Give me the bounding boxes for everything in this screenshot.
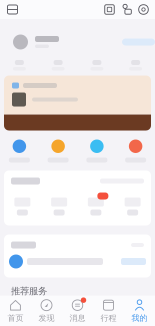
staticText: 首页 — [7, 313, 23, 323]
button[interactable]: Membership card — [5, 1, 20, 18]
button[interactable]: 首页 — [0, 300, 31, 323]
button[interactable]: Settings — [135, 1, 152, 18]
button[interactable]: 发现 — [31, 300, 62, 323]
button[interactable]: 我的 — [124, 300, 155, 323]
button[interactable]: Contacts — [118, 1, 135, 18]
staticText: 我的 — [131, 313, 147, 323]
button[interactable]: Service — [114, 197, 151, 215]
staticText: 消息 — [69, 313, 85, 323]
button[interactable]: Quick action — [0, 139, 39, 162]
staticText: 发现 — [38, 313, 54, 323]
button[interactable]: 消息 — [62, 300, 93, 323]
button[interactable]: Service — [4, 197, 41, 215]
button[interactable]: Quick action — [39, 139, 78, 162]
button[interactable]: Quick action — [116, 139, 155, 162]
staticText: 行程 — [100, 313, 116, 323]
staticText: 推荐服务 — [11, 285, 47, 297]
button[interactable]: Quick action — [77, 139, 116, 162]
button[interactable]: Notes — [101, 1, 118, 18]
button[interactable]: Service — [77, 197, 114, 215]
button[interactable]: Service — [41, 197, 78, 215]
button[interactable]: 行程 — [93, 300, 124, 323]
